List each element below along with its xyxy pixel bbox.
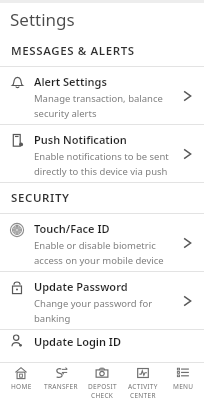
staticText: Touch/Face ID: [34, 221, 110, 236]
other: Transfer: [54, 366, 68, 380]
staticText: MENU: [173, 382, 194, 391]
staticText: access on your mobile device: [34, 254, 164, 267]
staticText: CHECK: [91, 391, 114, 400]
button[interactable]: Push Notification Enrollment: [0, 125, 204, 182]
other: Home: [14, 366, 28, 380]
button[interactable]: Alert Settings: [170, 67, 204, 124]
staticText: Update Password: [34, 279, 128, 294]
staticText: Enable or disable biometric login: [34, 239, 170, 252]
button[interactable]: Touch/Face ID: [0, 214, 204, 271]
staticText: directly to this device via push ...: [34, 165, 170, 178]
button[interactable]: Menu: [163, 363, 203, 400]
staticText: ACTIVITY: [128, 382, 158, 391]
staticText: TRANSFER: [44, 382, 78, 391]
button[interactable]: Transfer: [41, 363, 81, 400]
staticText: SECURITY: [11, 190, 70, 206]
staticText: banking: [34, 312, 71, 325]
button[interactable]: Home: [1, 363, 41, 400]
staticText: Update Login ID: [34, 334, 121, 349]
staticText: Settings: [10, 8, 75, 31]
button[interactable]: Update Login ID: [0, 330, 204, 352]
other: Activity Center: [136, 366, 150, 380]
staticText: MESSAGES & ALERTS: [11, 43, 135, 59]
button[interactable]: Alert Settings: [0, 67, 204, 124]
staticText: Change your password for online: [34, 297, 170, 310]
button[interactable]: Touch/Face ID: [170, 214, 204, 271]
staticText: DEPOSIT: [88, 382, 117, 391]
staticText: security alerts: [34, 107, 97, 120]
button[interactable]: Update Password: [170, 272, 204, 329]
staticText: HOME: [11, 382, 32, 391]
other: Deposit Check: [95, 366, 109, 380]
staticText: Push Notification Enrollment: [34, 132, 170, 147]
button[interactable]: Activity Center: [123, 363, 163, 400]
button[interactable]: Push Notification Enrollment: [170, 125, 204, 182]
staticText: Alert Settings: [34, 74, 107, 89]
staticText: CENTER: [130, 391, 156, 400]
button[interactable]: Update Password: [0, 272, 204, 329]
button[interactable]: Deposit Check: [82, 363, 122, 400]
staticText: Manage transaction, balance and: [34, 92, 170, 105]
staticText: Enable notifications to be sent: [34, 150, 169, 163]
other: Menu: [176, 366, 190, 380]
